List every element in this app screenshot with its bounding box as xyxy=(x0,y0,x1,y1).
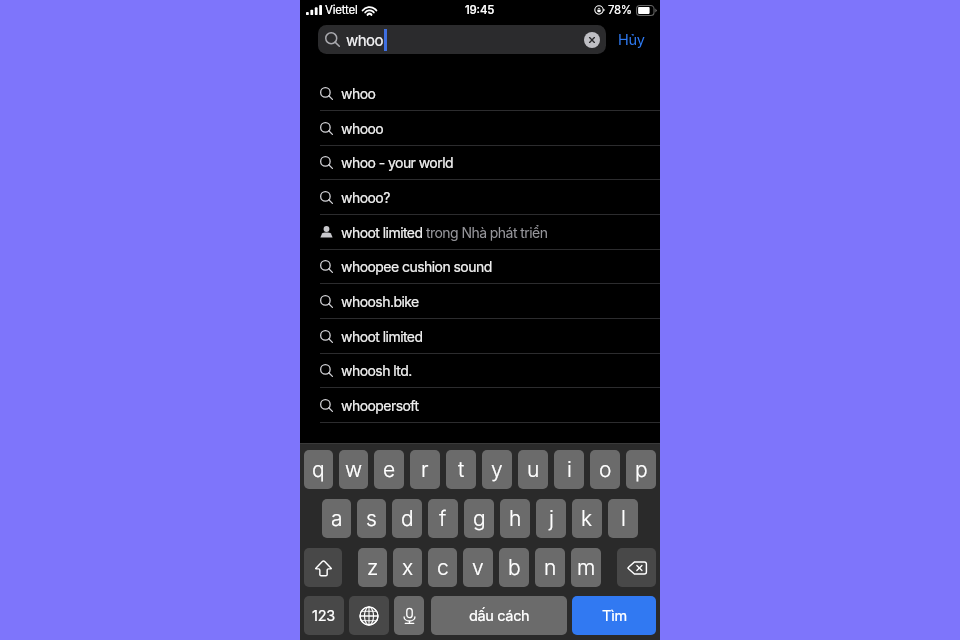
staticText: d xyxy=(401,506,414,531)
button[interactable]: o xyxy=(590,450,620,489)
staticText: f xyxy=(439,506,447,531)
staticText: whooo xyxy=(341,120,384,137)
staticText: whoot limited xyxy=(341,328,423,345)
button[interactable]: Hủy xyxy=(606,25,657,54)
staticText: y xyxy=(491,457,503,482)
button[interactable]: whooo? xyxy=(300,180,660,215)
staticText: whoosh ltd. xyxy=(341,362,412,379)
button[interactable]: y xyxy=(482,450,512,489)
button[interactable]: r xyxy=(410,450,440,489)
button[interactable]: w xyxy=(339,450,368,489)
staticText: r xyxy=(421,457,429,482)
button[interactable]: x xyxy=(393,548,422,587)
button[interactable]: h xyxy=(500,499,530,538)
button[interactable]: a xyxy=(322,499,351,538)
staticText: p xyxy=(635,457,648,482)
button[interactable]: whooo xyxy=(300,111,660,146)
staticText: w xyxy=(345,457,363,482)
staticText: h xyxy=(509,506,522,531)
button[interactable]: whoopee cushion sound xyxy=(300,249,660,284)
button[interactable]: v xyxy=(463,548,493,587)
button[interactable]: j xyxy=(536,499,566,538)
staticText: whoo xyxy=(341,85,376,102)
button[interactable]: g xyxy=(464,499,494,538)
button[interactable]: whoo xyxy=(300,76,660,111)
staticText: Hủy xyxy=(618,31,645,49)
button[interactable]: f xyxy=(428,499,458,538)
button[interactable]: whoopersoft xyxy=(300,388,660,423)
button[interactable]: whoosh.bike xyxy=(300,284,660,319)
button[interactable]: n xyxy=(535,548,565,587)
staticText: s xyxy=(366,506,377,531)
staticText: a xyxy=(331,506,343,531)
button[interactable]: z xyxy=(358,548,387,587)
button[interactable]: t xyxy=(446,450,476,489)
staticText: whooo? xyxy=(341,189,390,206)
button[interactable]: whoo xyxy=(318,25,606,54)
button[interactable]: u xyxy=(518,450,548,489)
staticText: o xyxy=(599,457,612,482)
staticText: whoopee cushion sound xyxy=(341,258,492,275)
button[interactable]: b xyxy=(499,548,529,587)
button[interactable]: 123 xyxy=(304,596,344,635)
staticText: e xyxy=(383,457,396,482)
button[interactable]: i xyxy=(554,450,584,489)
staticText: b xyxy=(508,555,521,580)
button[interactable]: Clear text xyxy=(584,32,600,48)
button[interactable]: Dictation xyxy=(394,596,424,635)
staticText: dấu cách xyxy=(469,607,530,625)
staticText: whoo xyxy=(346,31,383,49)
staticText: m xyxy=(577,555,596,580)
staticText: Tìm xyxy=(602,607,627,625)
button[interactable]: q xyxy=(304,450,333,489)
staticText: c xyxy=(437,555,449,580)
staticText: whoosh.bike xyxy=(341,293,419,310)
staticText: 19:45 xyxy=(465,3,495,17)
staticText: whoot limited trong Nhà phát triển xyxy=(341,224,548,241)
staticText: Viettel xyxy=(325,3,358,17)
staticText: x xyxy=(402,555,414,580)
button[interactable]: whoot limited trong Nhà phát triển xyxy=(300,215,660,250)
button[interactable]: whoo - your world xyxy=(300,145,660,180)
staticText: q xyxy=(312,457,325,482)
staticText: t xyxy=(458,457,465,482)
staticText: i xyxy=(567,457,572,482)
button[interactable]: m xyxy=(571,548,601,587)
button[interactable]: Tìm xyxy=(572,596,656,635)
staticText: z xyxy=(367,555,379,580)
button[interactable]: whoosh ltd. xyxy=(300,353,660,388)
staticText: u xyxy=(527,457,540,482)
button[interactable]: e xyxy=(374,450,404,489)
button[interactable]: dấu cách xyxy=(431,596,567,635)
button[interactable]: Backspace xyxy=(617,548,656,587)
button[interactable]: k xyxy=(572,499,602,538)
button[interactable]: p xyxy=(626,450,656,489)
button[interactable]: Emoji and languages xyxy=(349,596,389,635)
button[interactable]: s xyxy=(357,499,386,538)
button[interactable]: whoot limited xyxy=(300,319,660,354)
staticText: l xyxy=(621,506,626,531)
button[interactable]: c xyxy=(428,548,457,587)
button[interactable]: d xyxy=(392,499,422,538)
button[interactable]: l xyxy=(608,499,638,538)
staticText: v xyxy=(472,555,484,580)
button[interactable]: Shift xyxy=(304,548,342,587)
staticText: 123 xyxy=(312,607,336,625)
staticText: 78% xyxy=(608,3,632,17)
staticText: whoopersoft xyxy=(341,397,419,414)
staticText: k xyxy=(581,506,593,531)
staticText: j xyxy=(549,506,554,531)
staticText: n xyxy=(544,555,557,580)
staticText: g xyxy=(473,506,486,531)
staticText: whoo - your world xyxy=(341,154,454,171)
